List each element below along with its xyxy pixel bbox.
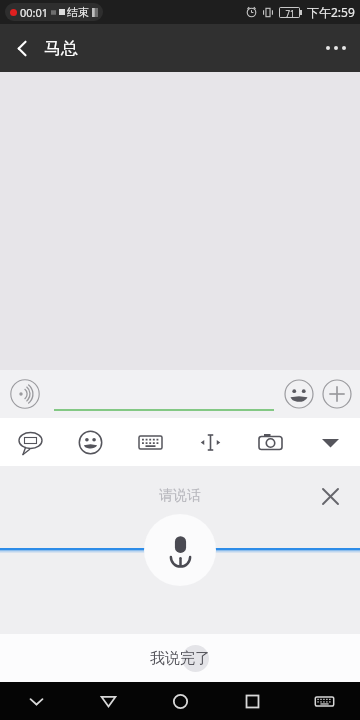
staticText: 马总 xyxy=(44,38,78,59)
button[interactable]: Voice input xyxy=(8,377,42,411)
button[interactable]: Add xyxy=(320,377,354,411)
button[interactable]: 我说完了 xyxy=(0,634,360,682)
button[interactable]: Back xyxy=(0,24,44,72)
button[interactable]: Keyboard xyxy=(120,418,180,466)
button[interactable]: Camera xyxy=(240,418,300,466)
staticText: 请说话 xyxy=(159,487,201,505)
button[interactable]: Back xyxy=(72,682,144,720)
button[interactable] xyxy=(54,376,274,412)
staticText: 结束 xyxy=(67,5,89,19)
button[interactable]: More options xyxy=(312,24,360,72)
button[interactable]: Recents xyxy=(216,682,288,720)
button[interactable]: Lingyun voice xyxy=(0,418,60,466)
button[interactable]: Microphone xyxy=(144,514,216,586)
button[interactable]: Emoji xyxy=(282,377,316,411)
button[interactable]: Hide keyboard xyxy=(0,682,72,720)
button[interactable]: Close xyxy=(313,479,347,513)
button[interactable]: More xyxy=(300,418,360,466)
staticText: 00:01 xyxy=(20,5,49,20)
button[interactable]: Keyboard xyxy=(288,682,360,720)
button[interactable]: Cursor xyxy=(180,418,240,466)
button[interactable]: Home xyxy=(144,682,216,720)
staticText: 我说完了 xyxy=(150,649,210,668)
button[interactable]: Emoji xyxy=(60,418,120,466)
staticText: 下午2:59 xyxy=(307,4,355,20)
staticText: 71 xyxy=(285,8,295,17)
